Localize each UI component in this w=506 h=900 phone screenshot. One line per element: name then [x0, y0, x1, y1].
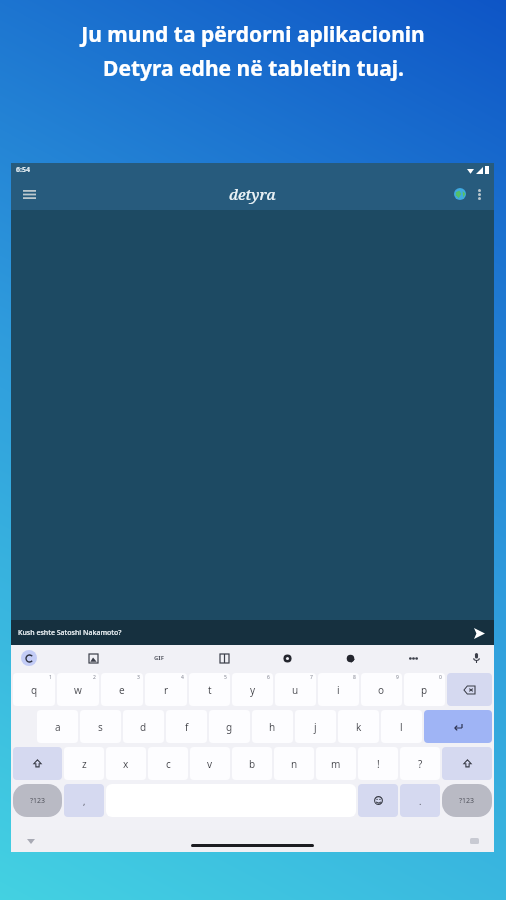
button[interactable]: p	[404, 673, 445, 706]
button[interactable]: Kush eshte Satoshi Nakamoto?	[11, 620, 494, 645]
button[interactable]: Enter	[424, 710, 492, 743]
staticText: k	[356, 720, 362, 734]
button[interactable]: d	[123, 710, 164, 743]
button[interactable]: Settings	[279, 650, 295, 666]
staticText: ,	[83, 795, 86, 807]
button[interactable]: l	[381, 710, 422, 743]
staticText: n	[291, 757, 298, 771]
staticText: i	[337, 683, 340, 697]
staticText: 1	[49, 674, 52, 681]
button[interactable]: .	[400, 784, 440, 817]
button[interactable]: y	[232, 673, 273, 706]
button[interactable]: ,	[64, 784, 104, 817]
staticText: m	[331, 757, 341, 771]
button[interactable]: u	[275, 673, 316, 706]
staticText: GIF	[154, 654, 164, 662]
button[interactable]: z	[64, 747, 104, 780]
staticText: y	[250, 683, 256, 697]
staticText: t	[208, 683, 212, 697]
staticText: 0	[439, 674, 442, 681]
button[interactable]: ?123	[442, 784, 492, 817]
button[interactable]: Voice input	[468, 650, 484, 666]
button[interactable]: Backspace	[447, 673, 492, 706]
button[interactable]: Clipboard	[216, 650, 232, 666]
staticText: ?123	[459, 796, 475, 806]
button[interactable]: x	[106, 747, 146, 780]
staticText: g	[226, 720, 233, 734]
button[interactable]: ?	[400, 747, 440, 780]
button[interactable]: More options	[470, 185, 488, 203]
button[interactable]: b	[232, 747, 272, 780]
staticText: 7	[310, 674, 313, 681]
button[interactable]: !	[358, 747, 398, 780]
button[interactable]: g	[209, 710, 250, 743]
staticText: s	[98, 720, 103, 734]
button[interactable]: Language	[450, 184, 470, 204]
button[interactable]: m	[316, 747, 356, 780]
staticText: !	[377, 757, 380, 771]
button[interactable]: Shift	[13, 747, 62, 780]
button[interactable]: j	[295, 710, 336, 743]
button[interactable]: t	[189, 673, 230, 706]
staticText: a	[55, 720, 61, 734]
staticText: detyra	[229, 184, 276, 204]
button[interactable]: n	[274, 747, 314, 780]
button[interactable]: More	[405, 650, 421, 666]
button[interactable]: Switch keyboard	[466, 833, 482, 849]
staticText: u	[292, 683, 299, 697]
button[interactable]: Menu	[19, 184, 39, 204]
staticText: x	[123, 757, 129, 771]
button[interactable]: c	[148, 747, 188, 780]
staticText: 4	[181, 674, 184, 681]
button[interactable]: r	[145, 673, 187, 706]
button[interactable]: f	[166, 710, 207, 743]
button[interactable]: Search	[21, 650, 37, 666]
button[interactable]: Emoji	[358, 784, 398, 817]
button[interactable]: s	[80, 710, 121, 743]
button[interactable]: Stickers	[342, 650, 358, 666]
staticText: 9	[396, 674, 399, 681]
staticText: Kush eshte Satoshi Nakamoto?	[18, 628, 122, 638]
staticText: 2	[93, 674, 96, 681]
button[interactable]: a	[37, 710, 78, 743]
staticText: e	[119, 683, 125, 697]
button[interactable]: h	[252, 710, 293, 743]
staticText: j	[314, 720, 317, 734]
staticText: p	[421, 683, 428, 697]
button[interactable]: k	[338, 710, 379, 743]
staticText: 6	[267, 674, 270, 681]
staticText: 8	[353, 674, 356, 681]
staticText: z	[82, 757, 87, 771]
staticText: .	[419, 795, 422, 807]
staticText: b	[249, 757, 256, 771]
button[interactable]: Hide keyboard	[23, 833, 39, 849]
staticText: l	[400, 720, 403, 734]
button[interactable]: Image	[85, 650, 101, 666]
staticText: ?123	[30, 796, 46, 806]
staticText: r	[164, 683, 169, 697]
staticText: f	[185, 720, 189, 734]
button[interactable]: GIF	[149, 650, 169, 666]
button[interactable]: Shift	[442, 747, 492, 780]
staticText: ?	[418, 757, 423, 771]
button[interactable]: w	[57, 673, 99, 706]
button[interactable]: v	[190, 747, 230, 780]
staticText: 3	[137, 674, 140, 681]
button[interactable]: i	[318, 673, 359, 706]
staticText: Detyra edhe në tabletin tuaj.	[103, 54, 404, 83]
button[interactable]: e	[101, 673, 143, 706]
button[interactable]: o	[361, 673, 402, 706]
staticText: w	[74, 683, 82, 697]
staticText: 5	[224, 674, 227, 681]
staticText: v	[207, 757, 213, 771]
staticText: d	[140, 720, 147, 734]
staticText: 6:54	[16, 165, 30, 175]
staticText: Ju mund ta përdorni aplikacionin	[81, 20, 425, 49]
button[interactable]: ?123	[13, 784, 62, 817]
button[interactable]: q	[13, 673, 55, 706]
button[interactable]: Send	[471, 625, 487, 641]
staticText: q	[31, 683, 38, 697]
staticText: o	[378, 683, 385, 697]
staticText: h	[269, 720, 276, 734]
